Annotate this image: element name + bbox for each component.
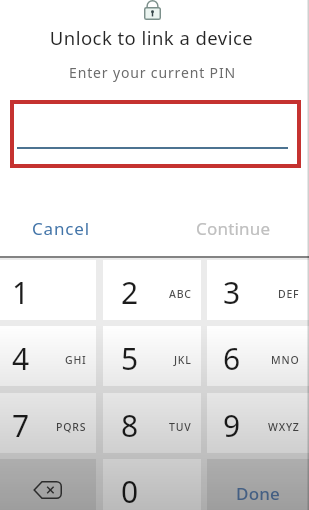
staticText: 5 xyxy=(121,338,139,379)
button[interactable]: 8 xyxy=(103,393,201,453)
button[interactable]: 0 xyxy=(103,459,201,510)
button[interactable]: 5 xyxy=(103,326,201,386)
button[interactable]: 7 xyxy=(0,393,96,453)
button[interactable]: 3 xyxy=(207,260,309,320)
button[interactable]: Continue xyxy=(159,211,299,245)
staticText: 0 xyxy=(121,471,139,510)
staticText: GHI xyxy=(65,353,87,367)
staticText: Done xyxy=(236,482,281,505)
staticText: DEF xyxy=(278,287,300,301)
staticText: Cancel xyxy=(32,217,91,240)
button[interactable]: 4 xyxy=(0,326,96,386)
button[interactable]: 6 xyxy=(207,326,309,386)
button[interactable]: Done xyxy=(207,459,309,510)
button[interactable]: 1 xyxy=(0,260,96,320)
staticText: 4 xyxy=(12,338,30,379)
button[interactable]: 9 xyxy=(207,393,309,453)
staticText: Unlock to link a device xyxy=(0,25,306,50)
staticText: WXYZ xyxy=(268,420,300,434)
staticText: 6 xyxy=(223,338,241,379)
staticText: 2 xyxy=(121,272,139,313)
staticText: 3 xyxy=(223,272,241,313)
staticText: Enter your current PIN xyxy=(0,63,307,82)
staticText: MNO xyxy=(271,353,300,367)
staticText: 9 xyxy=(223,405,241,446)
staticText: Continue xyxy=(196,217,271,240)
button[interactable]: Backspace xyxy=(0,459,96,510)
staticText: 8 xyxy=(121,405,139,446)
staticText: JKL xyxy=(174,353,192,367)
staticText: PQRS xyxy=(56,420,87,434)
staticText: 7 xyxy=(12,405,30,446)
staticText: ABC xyxy=(169,287,192,301)
button[interactable]: 2 xyxy=(103,260,201,320)
staticText: 1 xyxy=(12,272,30,313)
button[interactable]: Cancel xyxy=(0,211,150,245)
staticText: TUV xyxy=(169,420,192,434)
